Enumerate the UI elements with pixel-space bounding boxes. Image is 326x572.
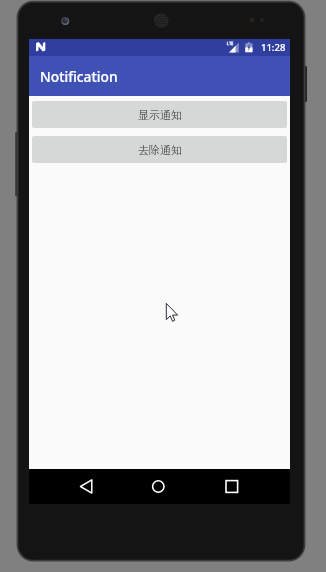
button[interactable]: Notification	[29, 56, 290, 96]
staticText: 显示通知	[138, 108, 182, 122]
staticText: 11:28	[261, 41, 286, 54]
staticText: Notification	[40, 67, 118, 86]
staticText: 去除通知	[138, 143, 182, 157]
button[interactable]: Back	[65, 469, 108, 504]
button[interactable]: 显示通知	[32, 101, 287, 128]
button[interactable]: 去除通知	[32, 136, 287, 163]
button[interactable]: Recents	[210, 469, 253, 504]
button[interactable]: Home	[137, 469, 180, 504]
